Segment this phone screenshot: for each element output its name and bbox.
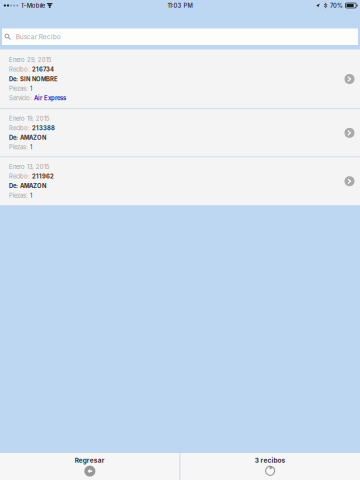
staticText: Express bbox=[44, 94, 66, 102]
staticText: Piezas: bbox=[9, 85, 28, 92]
staticText: 1 bbox=[30, 192, 32, 199]
button[interactable]: Regresar bbox=[0, 453, 180, 480]
button[interactable]: 3 bbox=[180, 453, 360, 480]
staticText: Recibo: bbox=[9, 66, 30, 73]
staticText: Recibo: bbox=[9, 173, 30, 180]
staticText: Piezas: bbox=[9, 192, 28, 199]
staticText: De: bbox=[9, 134, 18, 141]
staticText: T-Mobile bbox=[21, 2, 45, 9]
staticText: 216734 bbox=[32, 66, 54, 73]
staticText: SIN bbox=[20, 75, 30, 83]
staticText: 211962 bbox=[32, 173, 54, 180]
staticText: De: bbox=[9, 75, 18, 83]
staticText: 70% bbox=[330, 2, 343, 9]
button[interactable]: Enero bbox=[0, 49, 360, 108]
staticText: Air bbox=[34, 94, 42, 102]
staticText: Recibo: bbox=[9, 124, 30, 132]
button[interactable]: Enero bbox=[0, 157, 360, 205]
staticText: 3 bbox=[255, 456, 259, 464]
staticText: AMAZON bbox=[20, 134, 46, 141]
staticText: recibos bbox=[260, 456, 285, 464]
staticText: Servicio: bbox=[9, 94, 32, 102]
staticText: NOMBRE bbox=[32, 75, 58, 83]
staticText: 2015 bbox=[38, 56, 52, 63]
staticText: Enero bbox=[9, 56, 25, 63]
button[interactable]: Enero bbox=[0, 109, 360, 157]
staticText: AMAZON bbox=[20, 182, 46, 189]
staticText: Enero bbox=[9, 115, 25, 122]
staticText: 29, bbox=[27, 56, 36, 63]
staticText: 213388 bbox=[32, 124, 55, 132]
staticText: 11:03 PM bbox=[167, 2, 192, 9]
staticText: 1 bbox=[30, 144, 32, 151]
staticText: 2015 bbox=[36, 115, 50, 122]
staticText: 2015 bbox=[36, 163, 50, 170]
staticText: 13, bbox=[27, 163, 34, 170]
staticText: Enero bbox=[9, 163, 25, 170]
staticText: 19, bbox=[27, 115, 34, 122]
staticText: Regresar bbox=[75, 456, 105, 464]
staticText: Piezas: bbox=[9, 144, 28, 151]
staticText: Buscar Recibo bbox=[16, 33, 61, 41]
button[interactable]: Buscar Recibo bbox=[2, 28, 358, 45]
staticText: 1 bbox=[30, 85, 32, 92]
staticText: De: bbox=[9, 182, 18, 189]
